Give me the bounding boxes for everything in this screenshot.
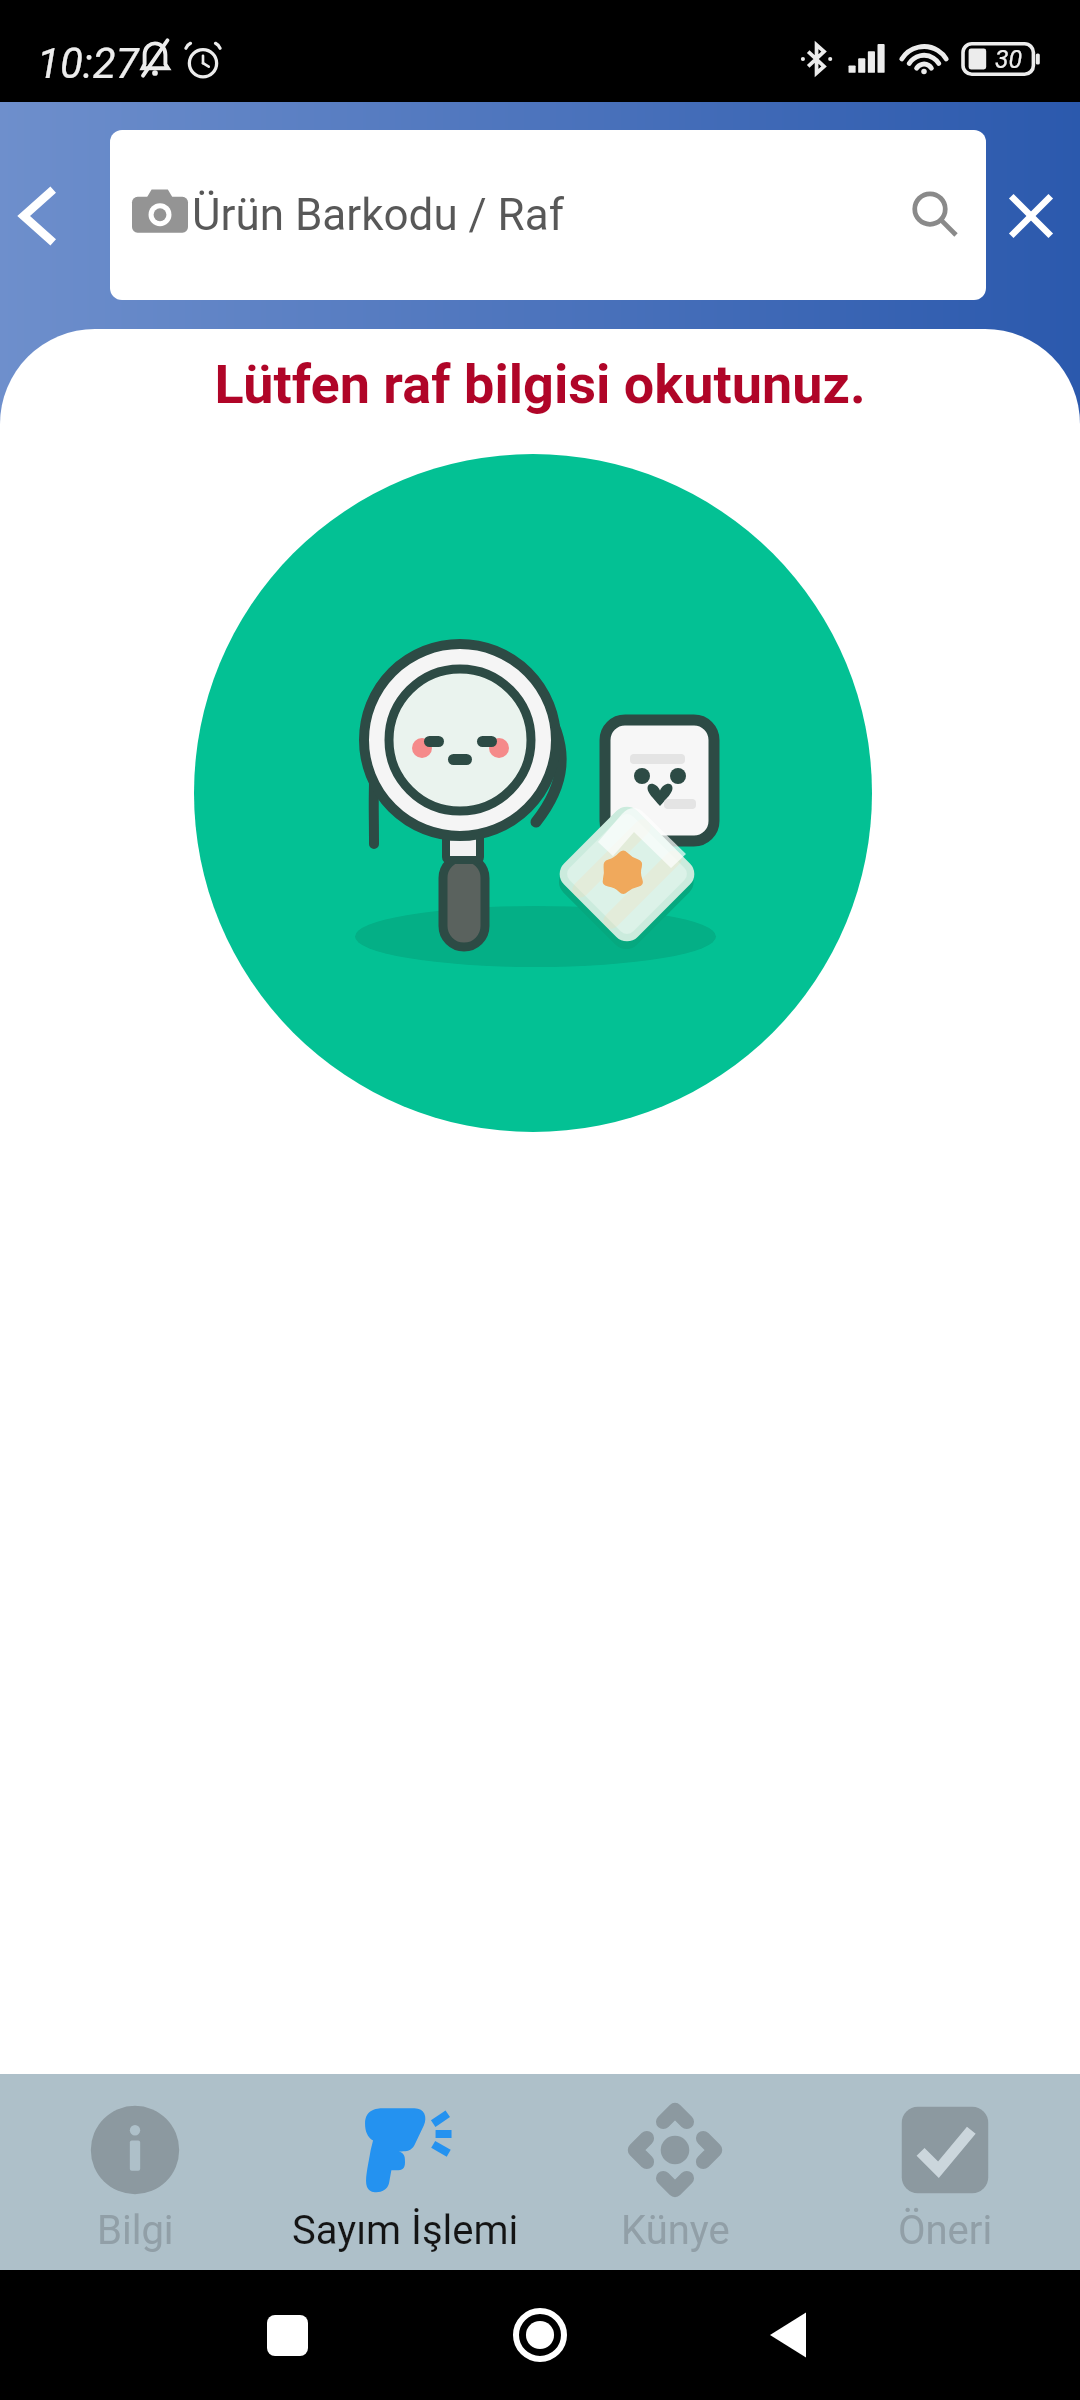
staticText: Ürün Barkodu / Raf bbox=[192, 189, 564, 241]
staticText: Bilgi bbox=[97, 2207, 174, 2254]
button[interactable]: Künye bbox=[540, 2074, 810, 2270]
button[interactable]: Close bbox=[988, 173, 1074, 259]
staticText: Künye bbox=[621, 2207, 730, 2254]
staticText: 10:27 bbox=[37, 39, 139, 88]
button[interactable]: Home bbox=[510, 2305, 570, 2365]
button[interactable]: Ürün Barkodu / Raf bbox=[110, 130, 986, 300]
button[interactable]: Bilgi bbox=[0, 2074, 270, 2270]
button[interactable]: Recents bbox=[261, 2309, 313, 2361]
staticText: 30 bbox=[995, 45, 1023, 74]
staticText: Lütfen raf bilgisi okutunuz. bbox=[214, 353, 866, 416]
staticText: Sayım İşlemi bbox=[292, 2207, 519, 2254]
staticText: Öneri bbox=[898, 2207, 993, 2254]
button[interactable]: Back bbox=[0, 171, 83, 261]
button[interactable]: Sayım İşlemi bbox=[270, 2074, 540, 2270]
button[interactable]: Back bbox=[762, 2309, 814, 2361]
button[interactable]: Öneri bbox=[810, 2074, 1080, 2270]
